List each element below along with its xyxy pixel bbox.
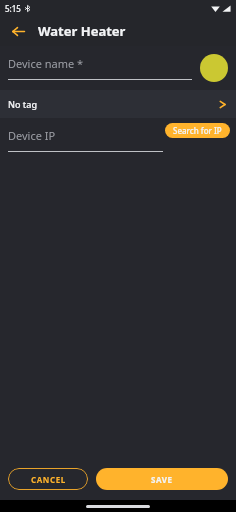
button[interactable]: SAVE	[96, 468, 228, 490]
staticText: CANCEL	[31, 474, 66, 485]
staticText: Device name *	[8, 56, 84, 71]
button[interactable]: No tag	[0, 90, 236, 118]
staticText: Water Heater	[38, 22, 126, 40]
staticText: 5:15	[5, 3, 21, 14]
button[interactable]: Device name *	[8, 56, 192, 80]
staticText: No tag	[8, 98, 37, 110]
button[interactable]: Device IP	[8, 128, 163, 152]
staticText: Search for IP	[173, 125, 222, 136]
staticText: SAVE	[151, 474, 173, 485]
button[interactable]: CANCEL	[8, 468, 88, 490]
button[interactable]: Search for IP	[165, 123, 230, 138]
button[interactable]: Device colour	[200, 54, 228, 82]
button[interactable]: Back	[6, 19, 30, 43]
staticText: Device IP	[8, 128, 56, 143]
